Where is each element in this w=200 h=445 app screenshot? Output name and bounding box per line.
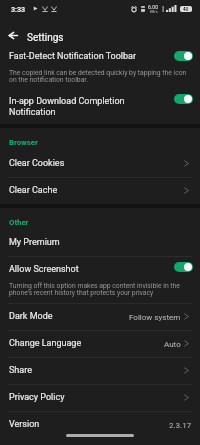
staticText: 6.00 bbox=[148, 4, 159, 10]
button[interactable]: My Premium bbox=[0, 230, 200, 256]
button[interactable]: Toggle setting bbox=[174, 94, 193, 104]
staticText: Allow Screenshot bbox=[9, 263, 79, 274]
staticText: 40 bbox=[183, 7, 189, 12]
staticText: Follow system bbox=[129, 313, 181, 322]
staticText: Auto bbox=[164, 340, 181, 349]
staticText: In-app Download Completion Notification bbox=[9, 95, 125, 117]
button[interactable]: Toggle setting bbox=[174, 262, 193, 272]
staticText: Settings bbox=[27, 32, 64, 44]
button[interactable]: Toggle setting bbox=[174, 51, 193, 61]
button[interactable]: Fast-Detect Notification Toolbar bbox=[0, 45, 200, 90]
button[interactable]: Clear Cache bbox=[0, 178, 200, 204]
staticText: Browser bbox=[9, 138, 38, 147]
button[interactable]: Back bbox=[0, 17, 23, 45]
staticText: 2.3.17 bbox=[169, 421, 192, 430]
staticText: Clear Cache bbox=[9, 185, 58, 195]
staticText: 3:33 bbox=[11, 5, 26, 13]
staticText: Dark Mode bbox=[9, 311, 53, 321]
staticText: Version bbox=[9, 419, 40, 429]
staticText: Change Language bbox=[9, 338, 82, 348]
staticText: KB/s bbox=[150, 10, 158, 14]
button[interactable]: Version bbox=[0, 412, 200, 438]
button[interactable]: Allow Screenshot bbox=[0, 257, 200, 303]
staticText: Turning off this option makes app conten… bbox=[9, 282, 192, 296]
button[interactable]: Dark Mode bbox=[0, 304, 200, 330]
staticText: Clear Cookies bbox=[9, 158, 65, 168]
button[interactable]: In-app Download Completion Notification bbox=[0, 90, 200, 124]
staticText: Fast-Detect Notification Toolbar bbox=[9, 50, 137, 61]
staticText: Share bbox=[9, 365, 32, 375]
button[interactable]: Privacy Policy bbox=[0, 385, 200, 411]
staticText: My Premium bbox=[9, 237, 60, 247]
staticText: Privacy Policy bbox=[9, 392, 65, 402]
button[interactable]: Share bbox=[0, 358, 200, 384]
staticText: Other bbox=[9, 218, 29, 227]
button[interactable]: Clear Cookies bbox=[0, 151, 200, 177]
staticText: The copied link can be detected quickly … bbox=[9, 69, 192, 83]
button[interactable]: Change Language bbox=[0, 331, 200, 357]
